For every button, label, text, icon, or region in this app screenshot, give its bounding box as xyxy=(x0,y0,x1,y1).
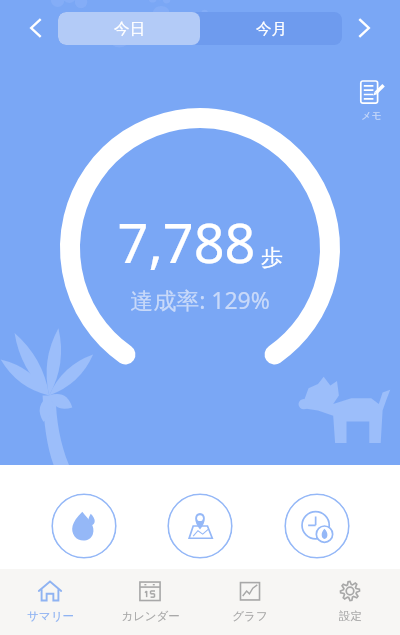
button[interactable]: 設定 xyxy=(300,569,400,635)
button[interactable]: グラフ xyxy=(200,569,300,635)
button[interactable]: Previous xyxy=(14,6,58,50)
staticText: 7,788 xyxy=(117,205,256,279)
button[interactable]: サマリー xyxy=(0,569,100,635)
button[interactable]: 今月 xyxy=(200,12,342,45)
staticText: 設定 xyxy=(339,609,362,623)
staticText: 歩 xyxy=(261,244,283,272)
staticText: メモ xyxy=(361,109,382,122)
button[interactable]: Next xyxy=(342,6,386,50)
staticText: カレンダー xyxy=(121,609,180,623)
button[interactable]: Calories xyxy=(51,493,117,559)
button[interactable]: Map xyxy=(167,493,233,559)
staticText: 今日 xyxy=(114,19,145,39)
staticText: サマリー xyxy=(27,609,74,623)
staticText: グラフ xyxy=(232,609,268,623)
button[interactable]: 今日 xyxy=(58,12,200,45)
staticText: 今月 xyxy=(256,19,287,39)
button[interactable]: メモ xyxy=(350,76,392,124)
button[interactable]: Active time xyxy=(284,493,350,559)
staticText: 達成率: 129% xyxy=(130,284,270,315)
button[interactable]: カレンダー xyxy=(100,569,200,635)
